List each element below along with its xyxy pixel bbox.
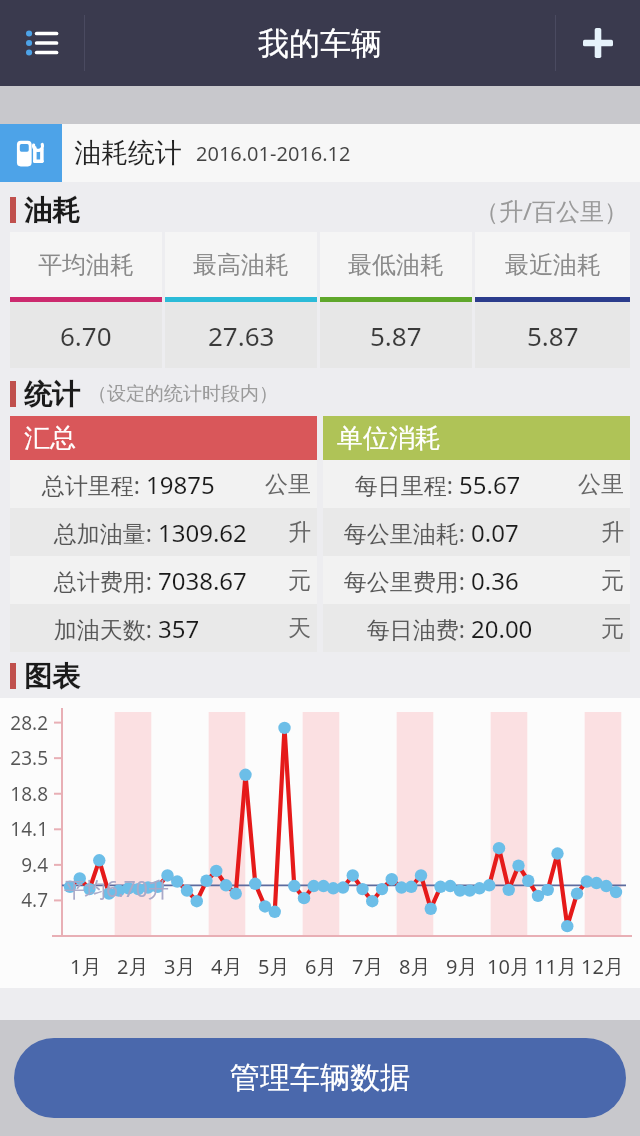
button[interactable]: Menu bbox=[0, 0, 84, 86]
staticText: 4.7 bbox=[0, 887, 48, 913]
staticText: 9月 bbox=[446, 953, 478, 980]
staticText: 3月 bbox=[164, 953, 196, 980]
staticText: 4月 bbox=[211, 953, 243, 980]
button[interactable]: 管理车辆数据 bbox=[14, 1038, 626, 1118]
staticText: 0.07 bbox=[471, 516, 601, 549]
staticText: 平均油耗 bbox=[38, 250, 134, 280]
staticText: 5月 bbox=[258, 953, 290, 980]
staticText: 11月 bbox=[534, 953, 577, 980]
staticText: 元 bbox=[601, 566, 624, 595]
staticText: 2月 bbox=[117, 953, 149, 980]
staticText: 2016.01-2016.12 bbox=[196, 140, 351, 167]
staticText: 1309.62 bbox=[158, 516, 288, 549]
staticText: （设定的统计时段内） bbox=[88, 382, 278, 406]
staticText: 平均6.70升 bbox=[64, 875, 169, 904]
staticText: 10月 bbox=[487, 953, 530, 980]
button[interactable]: 汇总 bbox=[10, 416, 317, 652]
staticText: 管理车辆数据 bbox=[230, 1059, 410, 1097]
staticText: 统计 bbox=[24, 377, 80, 412]
staticText: 每日里程: bbox=[329, 469, 453, 500]
staticText: 公里 bbox=[265, 470, 311, 499]
staticText: 图表 bbox=[24, 659, 80, 694]
staticText: （升/百公里） bbox=[475, 194, 628, 227]
staticText: 升 bbox=[601, 518, 624, 547]
button[interactable]: 最近油耗 bbox=[475, 232, 630, 368]
staticText: 单位消耗 bbox=[337, 422, 441, 455]
staticText: 12月 bbox=[581, 953, 624, 980]
staticText: 9.4 bbox=[0, 852, 48, 878]
staticText: 28.2 bbox=[0, 710, 48, 736]
staticText: 7038.67 bbox=[158, 564, 288, 597]
staticText: 55.67 bbox=[459, 468, 578, 501]
staticText: 升 bbox=[288, 518, 311, 547]
button[interactable]: 最低油耗 bbox=[320, 232, 472, 368]
staticText: 7月 bbox=[352, 953, 384, 980]
staticText: 6月 bbox=[305, 953, 337, 980]
staticText: 5.87 bbox=[527, 318, 579, 353]
staticText: 5.87 bbox=[370, 318, 422, 353]
staticText: 加油天数: bbox=[16, 613, 152, 644]
staticText: 357 bbox=[158, 612, 288, 645]
staticText: 每公里费用: bbox=[329, 565, 465, 596]
staticText: 元 bbox=[601, 614, 624, 643]
button[interactable]: Add bbox=[556, 0, 640, 86]
staticText: 油耗 bbox=[24, 193, 80, 228]
staticText: 总计里程: bbox=[16, 469, 140, 500]
staticText: 总计费用: bbox=[16, 565, 152, 596]
staticText: 27.63 bbox=[208, 318, 275, 353]
staticText: 每公里油耗: bbox=[329, 517, 465, 548]
staticText: 8月 bbox=[399, 953, 431, 980]
staticText: 23.5 bbox=[0, 745, 48, 771]
staticText: 最低油耗 bbox=[348, 250, 444, 280]
staticText: 19875 bbox=[146, 468, 265, 501]
staticText: 最近油耗 bbox=[505, 250, 601, 280]
staticText: 6.70 bbox=[60, 318, 112, 353]
staticText: 14.1 bbox=[0, 816, 48, 842]
button[interactable]: 最高油耗 bbox=[165, 232, 317, 368]
staticText: 1月 bbox=[70, 953, 102, 980]
staticText: 油耗统计 bbox=[74, 136, 182, 170]
staticText: 公里 bbox=[578, 470, 624, 499]
staticText: 18.8 bbox=[0, 781, 48, 807]
staticText: 元 bbox=[288, 566, 311, 595]
staticText: 每日油费: bbox=[329, 613, 465, 644]
staticText: 20.00 bbox=[471, 612, 601, 645]
staticText: 汇总 bbox=[24, 422, 76, 455]
button[interactable]: 油耗统计 bbox=[0, 124, 640, 182]
staticText: 总加油量: bbox=[16, 517, 152, 548]
button[interactable]: 平均油耗 bbox=[10, 232, 162, 368]
button[interactable]: 单位消耗 bbox=[323, 416, 630, 652]
staticText: 天 bbox=[288, 614, 311, 643]
staticText: 最高油耗 bbox=[193, 250, 289, 280]
staticText: 0.36 bbox=[471, 564, 601, 597]
staticText: 我的车辆 bbox=[258, 24, 382, 63]
